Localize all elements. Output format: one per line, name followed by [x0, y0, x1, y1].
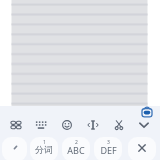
button[interactable]: Keyboard layout	[31, 115, 51, 135]
button[interactable]: Cut	[109, 115, 129, 135]
button[interactable]: Hide keyboard	[134, 115, 154, 135]
staticText: 3	[107, 139, 110, 146]
button[interactable]: 1	[30, 137, 58, 160]
staticText: DEF	[100, 144, 117, 156]
staticText: 2	[75, 139, 78, 146]
staticText: 1	[43, 139, 46, 146]
button[interactable]	[2, 137, 27, 160]
button[interactable]: 3	[94, 137, 122, 160]
staticText: ABC	[67, 144, 85, 156]
button[interactable]: Move cursor	[83, 115, 103, 135]
button[interactable]	[128, 137, 156, 160]
button[interactable]: Emoji	[57, 115, 77, 135]
staticText: 分词	[35, 144, 53, 155]
button[interactable]: Keyboard	[141, 106, 153, 118]
button[interactable]: 2	[62, 137, 90, 160]
button[interactable]: Grid	[6, 115, 26, 135]
